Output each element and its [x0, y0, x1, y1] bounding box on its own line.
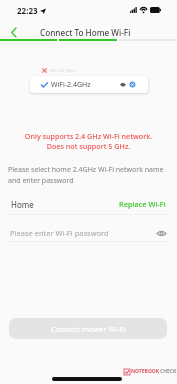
- staticText: Only supports 2.4 GHz Wi-Fi network. Doe…: [0, 131, 177, 151]
- staticText: Wifi-XXX_5GHz: [49, 68, 76, 73]
- staticText: 22:23: [17, 5, 38, 16]
- staticText: Home: [11, 199, 34, 210]
- staticText: NOTEBOOK: [131, 368, 160, 375]
- staticText: Replace Wi-Fi: [119, 199, 166, 209]
- staticText: Please enter Wi-Fi password: [10, 228, 109, 238]
- staticText: Connect To Home Wi-Fi: [40, 27, 131, 38]
- button[interactable]: Show password: [155, 227, 167, 239]
- staticText: Connect mower Wi-Fi: [51, 324, 126, 334]
- button[interactable]: WiFi-2.4GHz: [30, 76, 148, 93]
- button[interactable]: Replace Wi-Fi: [119, 199, 166, 209]
- staticText: WiFi-2.4GHz: [51, 80, 91, 90]
- staticText: CHECK: [160, 368, 177, 375]
- button[interactable]: Back: [7, 26, 20, 39]
- button[interactable]: Connect mower Wi-Fi: [9, 318, 167, 339]
- staticText: Please select home 2.4GHz Wi-Fi network …: [8, 165, 164, 185]
